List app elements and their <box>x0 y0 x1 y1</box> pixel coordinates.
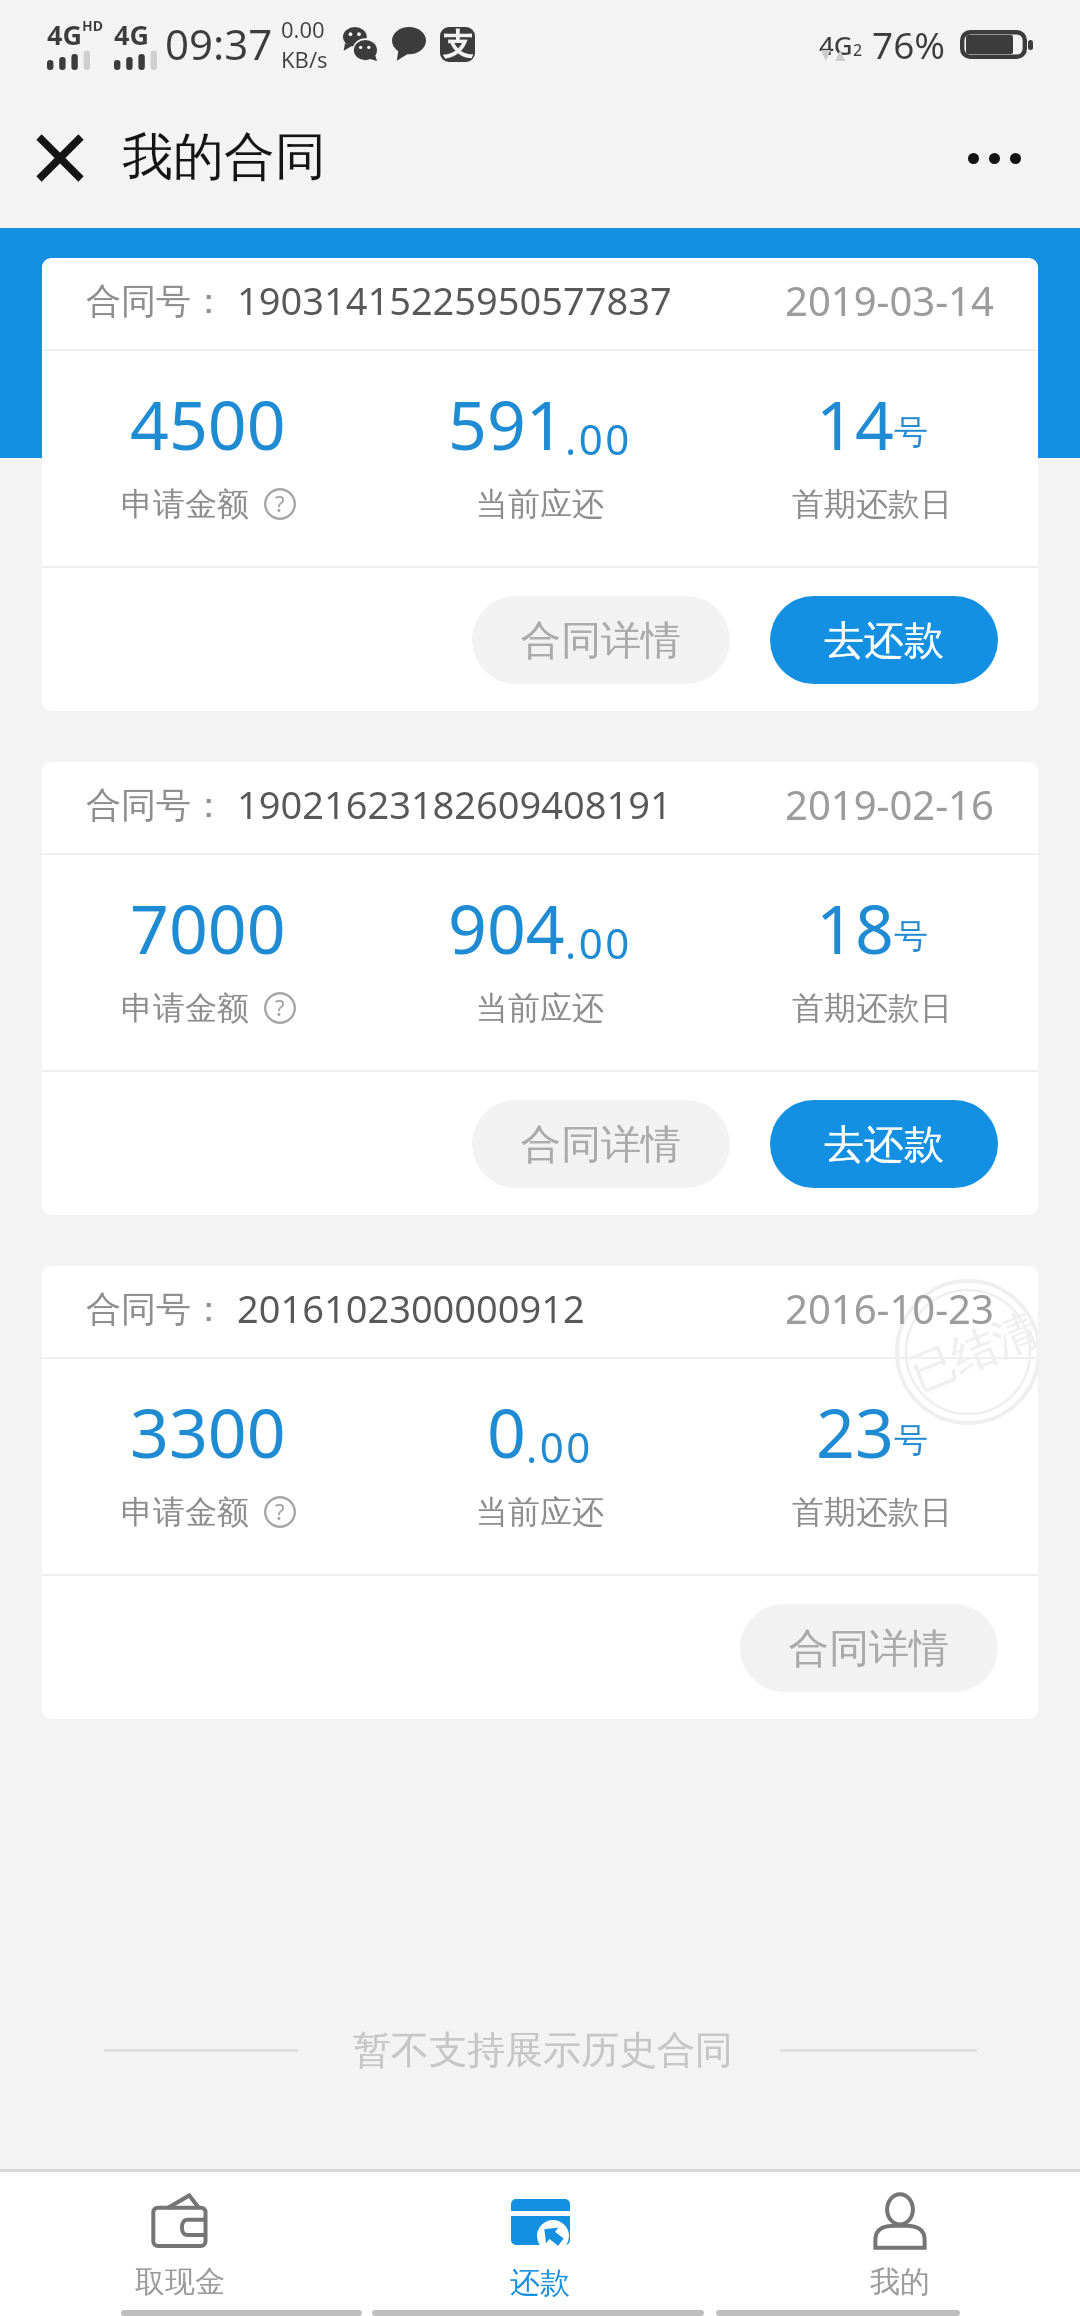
staticText: 591 <box>448 377 565 470</box>
staticText: 2019-03-14 <box>785 273 994 327</box>
staticText: 申请金额 <box>121 1492 249 1532</box>
staticText: 暂不支持展示历史合同 <box>353 2026 733 2074</box>
staticText: 当前应还 <box>476 1492 604 1532</box>
staticText: 首期还款日 <box>792 988 952 1028</box>
staticText: 去还款 <box>824 1119 944 1169</box>
staticText: 首期还款日 <box>792 1492 952 1532</box>
staticText: 14 <box>816 377 894 470</box>
staticText: .00 <box>565 410 632 467</box>
staticText: .00 <box>526 1418 593 1475</box>
button[interactable]: More options <box>938 102 1050 214</box>
staticText: 0 <box>487 1385 526 1478</box>
staticText: 0.00 <box>281 14 325 44</box>
staticText: 还款 <box>510 2264 570 2302</box>
button[interactable]: 去还款 <box>770 596 998 684</box>
button[interactable]: Close <box>4 102 116 214</box>
button[interactable]: 取现金 <box>0 2172 360 2301</box>
staticText: 合同详情 <box>789 1623 949 1673</box>
staticText: .00 <box>565 914 632 971</box>
staticText: 23 <box>816 1385 894 1478</box>
staticText: 09:37 <box>165 15 273 72</box>
staticText: 号 <box>894 411 928 454</box>
button[interactable]: 去还款 <box>770 1100 998 1188</box>
button[interactable]: 合同详情 <box>472 596 730 684</box>
staticText: 4G <box>47 16 82 53</box>
staticText: 2016-10-23 <box>785 1281 994 1335</box>
staticText: 我的合同 <box>122 125 326 189</box>
staticText: 当前应还 <box>476 484 604 524</box>
staticText: 号 <box>894 915 928 958</box>
staticText: ? <box>275 992 285 1022</box>
staticText: 取现金 <box>135 2263 225 2301</box>
staticText: 合同号： <box>86 279 226 323</box>
staticText: 4500 <box>130 377 286 470</box>
staticText: 我的 <box>870 2263 930 2301</box>
staticText: 2 <box>853 39 863 61</box>
staticText: 合同详情 <box>521 615 681 665</box>
staticText: 2016102300000912 <box>237 1282 585 1334</box>
button[interactable]: 还款 <box>360 2172 720 2302</box>
staticText: 支 <box>443 27 473 61</box>
staticText: 904 <box>448 881 565 974</box>
staticText: 申请金额 <box>121 988 249 1028</box>
staticText: 号 <box>894 1419 928 1462</box>
button[interactable]: 合同号： <box>42 258 1038 711</box>
staticText: 申请金额 <box>121 484 249 524</box>
staticText: 19031415225950577837 <box>237 274 672 326</box>
staticText: 首期还款日 <box>792 484 952 524</box>
staticText: HD <box>82 16 103 35</box>
staticText: 合同号： <box>86 783 226 827</box>
button[interactable]: 合同详情 <box>740 1604 998 1692</box>
button[interactable]: 我的 <box>720 2172 1080 2301</box>
staticText: 去还款 <box>824 615 944 665</box>
staticText: 76% <box>872 19 946 69</box>
button[interactable]: 已结清 <box>42 1266 1038 1719</box>
staticText: 3300 <box>130 1385 286 1478</box>
staticText: 合同详情 <box>521 1119 681 1169</box>
staticText: ? <box>275 1496 285 1526</box>
staticText: 合同号： <box>86 1287 226 1331</box>
staticText: 4G <box>819 27 853 62</box>
staticText: 2019-02-16 <box>785 777 994 831</box>
button[interactable]: 合同详情 <box>472 1100 730 1188</box>
staticText: 当前应还 <box>476 988 604 1028</box>
staticText: KB/s <box>281 44 328 74</box>
button[interactable]: 合同号： <box>42 762 1038 1215</box>
staticText: 已结清 <box>903 1302 1038 1402</box>
staticText: 19021623182609408191 <box>237 778 672 830</box>
staticText: 4G <box>114 16 149 53</box>
staticText: ? <box>275 488 285 518</box>
staticText: 7000 <box>130 881 286 974</box>
staticText: 18 <box>816 881 894 974</box>
